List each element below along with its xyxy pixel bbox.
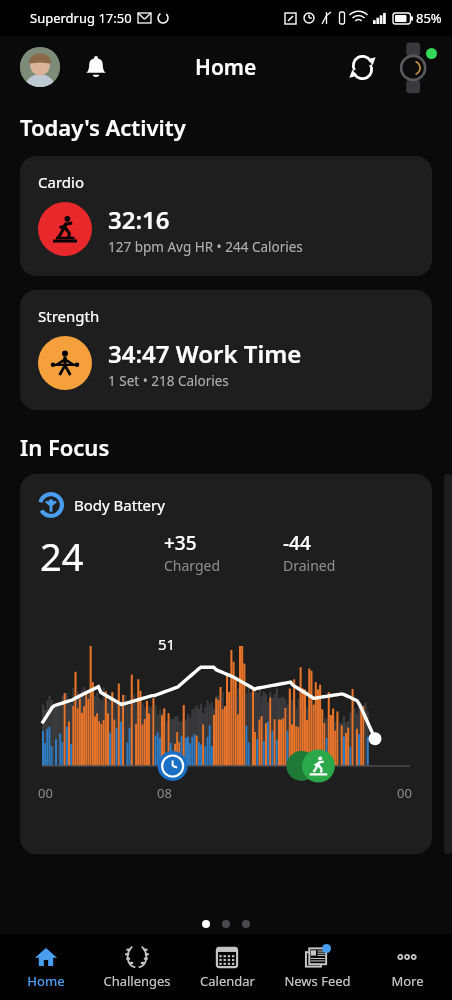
staticText: 24 bbox=[40, 530, 84, 582]
button[interactable]: Home bbox=[0, 934, 91, 1000]
button[interactable]: More bbox=[362, 934, 452, 1000]
staticText: 127 bpm Avg HR • 244 Calories bbox=[108, 238, 303, 256]
staticText: Drained bbox=[283, 556, 336, 575]
button[interactable]: Body Battery bbox=[20, 474, 432, 854]
staticText: Challenges bbox=[103, 972, 171, 990]
staticText: 08 bbox=[157, 784, 172, 802]
staticText: Calendar bbox=[200, 972, 255, 990]
staticText: Cardio bbox=[38, 172, 84, 192]
button[interactable]: Calendar bbox=[182, 934, 272, 1000]
button[interactable]: Strength bbox=[20, 290, 432, 410]
staticText: Body Battery bbox=[74, 495, 165, 515]
button[interactable]: News Feed bbox=[272, 934, 362, 1000]
staticText: -44 bbox=[283, 530, 311, 556]
button[interactable]: Challenges bbox=[91, 934, 182, 1000]
staticText: Superdrug 17:50 bbox=[30, 9, 132, 27]
staticText: +35 bbox=[164, 530, 197, 556]
staticText: More bbox=[391, 972, 424, 990]
button[interactable]: Sync bbox=[340, 45, 384, 89]
staticText: 00 bbox=[38, 784, 53, 802]
staticText: 85% bbox=[416, 9, 442, 27]
staticText: Charged bbox=[164, 556, 221, 575]
button[interactable]: Notifications bbox=[76, 47, 116, 87]
staticText: Strength bbox=[38, 306, 100, 326]
staticText: Home bbox=[195, 53, 257, 82]
staticText: News Feed bbox=[284, 972, 351, 990]
staticText: In Focus bbox=[20, 432, 110, 462]
staticText: 00 bbox=[397, 784, 412, 802]
button[interactable]: Cardio bbox=[20, 156, 432, 276]
staticText: Home bbox=[27, 972, 65, 990]
button[interactable]: Watch bbox=[392, 44, 438, 90]
staticText: 32:16 bbox=[108, 203, 170, 236]
staticText: 1 Set • 218 Calories bbox=[108, 372, 229, 390]
staticText: Today's Activity bbox=[20, 112, 186, 142]
button[interactable]: Profile bbox=[20, 47, 60, 87]
staticText: 51 bbox=[158, 634, 176, 654]
staticText: 34:47 Work Time bbox=[108, 337, 302, 370]
